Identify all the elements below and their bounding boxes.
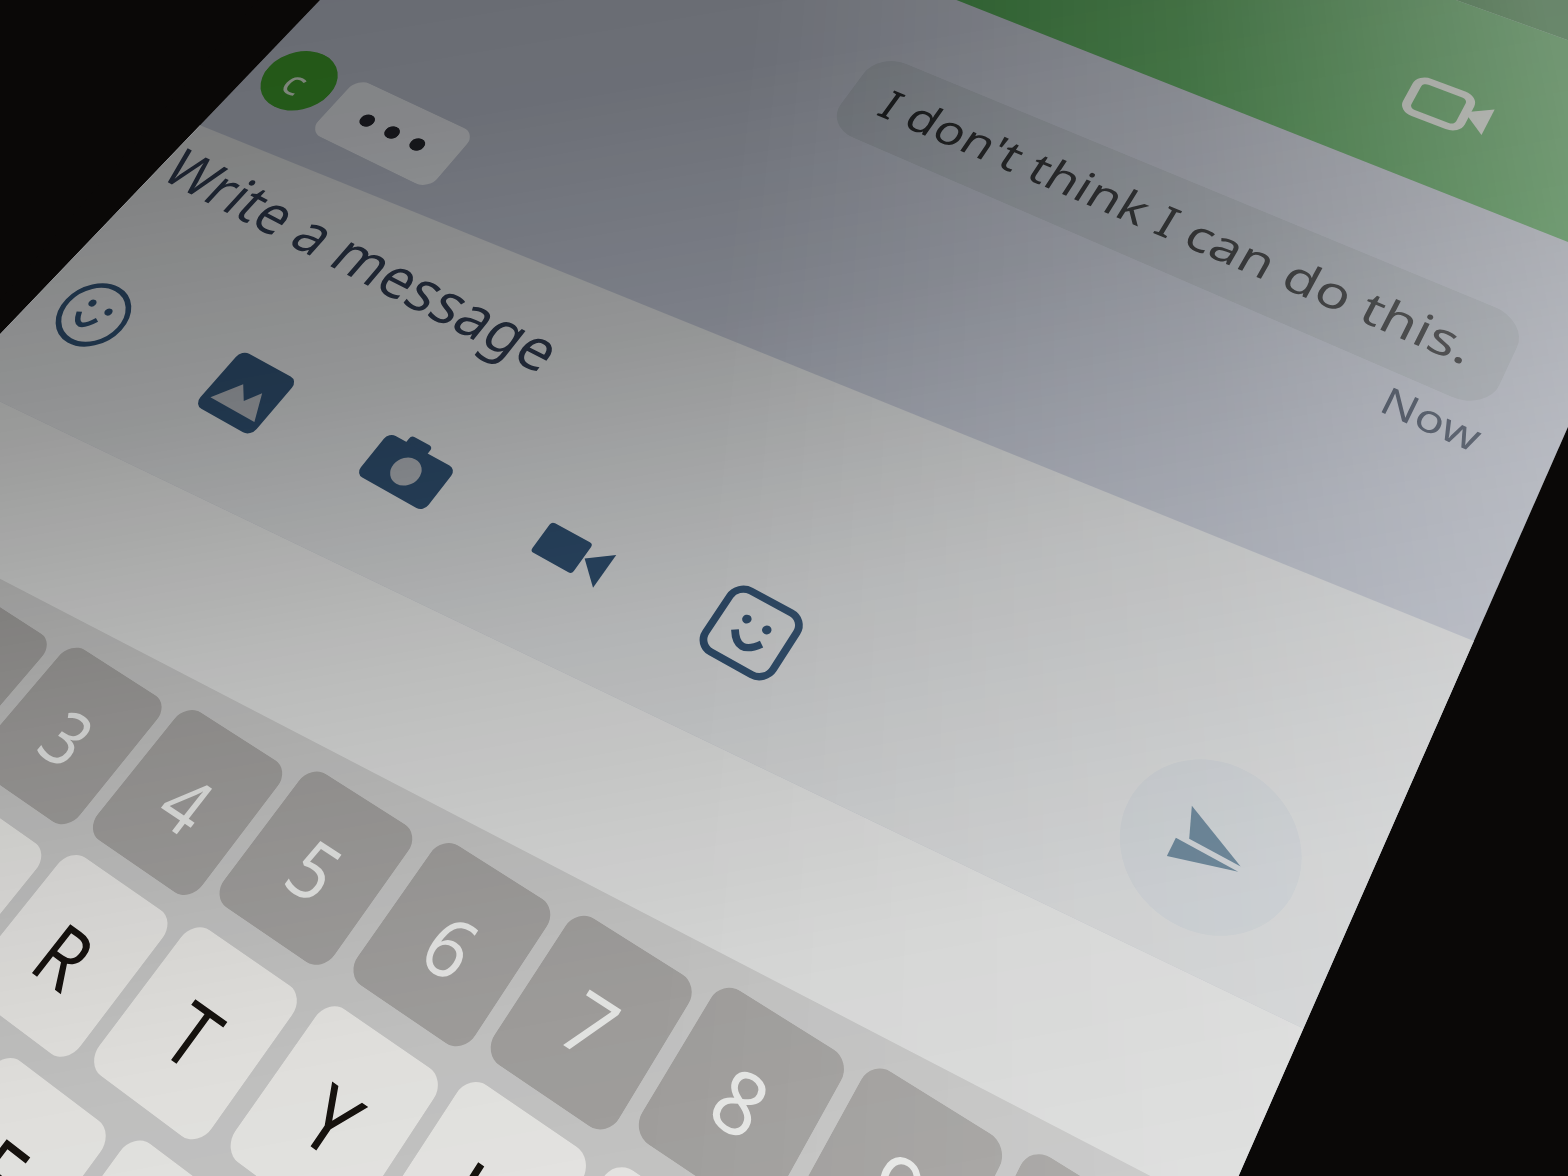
staticText: c: [268, 57, 327, 107]
staticText: U: [419, 1131, 541, 1176]
button[interactable]: R: [0, 846, 189, 1065]
button[interactable]: Insert emoji: [17, 261, 167, 370]
staticText: 5: [263, 814, 369, 925]
button[interactable]: Send message: [1076, 727, 1355, 971]
button[interactable]: I: [507, 1158, 749, 1176]
button[interactable]: F: [0, 1049, 130, 1176]
button[interactable]: Video call: [1353, 44, 1548, 173]
staticText: E: [0, 833, 1, 944]
button[interactable]: 3: [0, 639, 182, 833]
button[interactable]: 8: [626, 979, 855, 1176]
staticText: 7: [540, 963, 643, 1086]
staticText: 4: [134, 750, 241, 857]
button[interactable]: G: [0, 1132, 263, 1176]
button[interactable]: 2: [0, 580, 69, 765]
staticText: T: [138, 974, 253, 1096]
button[interactable]: T: [69, 919, 316, 1148]
staticText: R: [6, 897, 126, 1016]
staticText: 8: [691, 1037, 793, 1166]
button[interactable]: 7: [475, 907, 702, 1138]
button[interactable]: Send sticker: [676, 566, 824, 703]
button[interactable]: 9: [784, 1060, 1020, 1176]
staticText: 3: [14, 686, 122, 789]
button[interactable]: E: [0, 782, 65, 992]
button[interactable]: I don't think I can do this.: [824, 32, 1553, 427]
staticText: 2: [0, 625, 9, 723]
button[interactable]: c: [238, 38, 358, 124]
button[interactable]: 6: [335, 834, 563, 1055]
staticText: I don't think I can do this.: [865, 61, 1500, 394]
button[interactable]: 4: [69, 702, 300, 903]
button[interactable]: Take photo: [329, 408, 479, 531]
button[interactable]: Y: [208, 998, 454, 1176]
button[interactable]: Send video: [497, 487, 646, 617]
button[interactable]: 5: [198, 763, 428, 973]
staticText: Y: [277, 1055, 391, 1176]
staticText: 9: [846, 1121, 953, 1176]
button[interactable]: Send image: [169, 333, 320, 449]
button[interactable]: 0: [939, 1145, 1196, 1176]
staticText: Write a message: [99, 120, 594, 398]
staticText: Now: [1282, 334, 1503, 467]
button[interactable]: U: [355, 1073, 599, 1176]
staticText: 6: [400, 888, 504, 1005]
staticText: F: [0, 1108, 57, 1176]
